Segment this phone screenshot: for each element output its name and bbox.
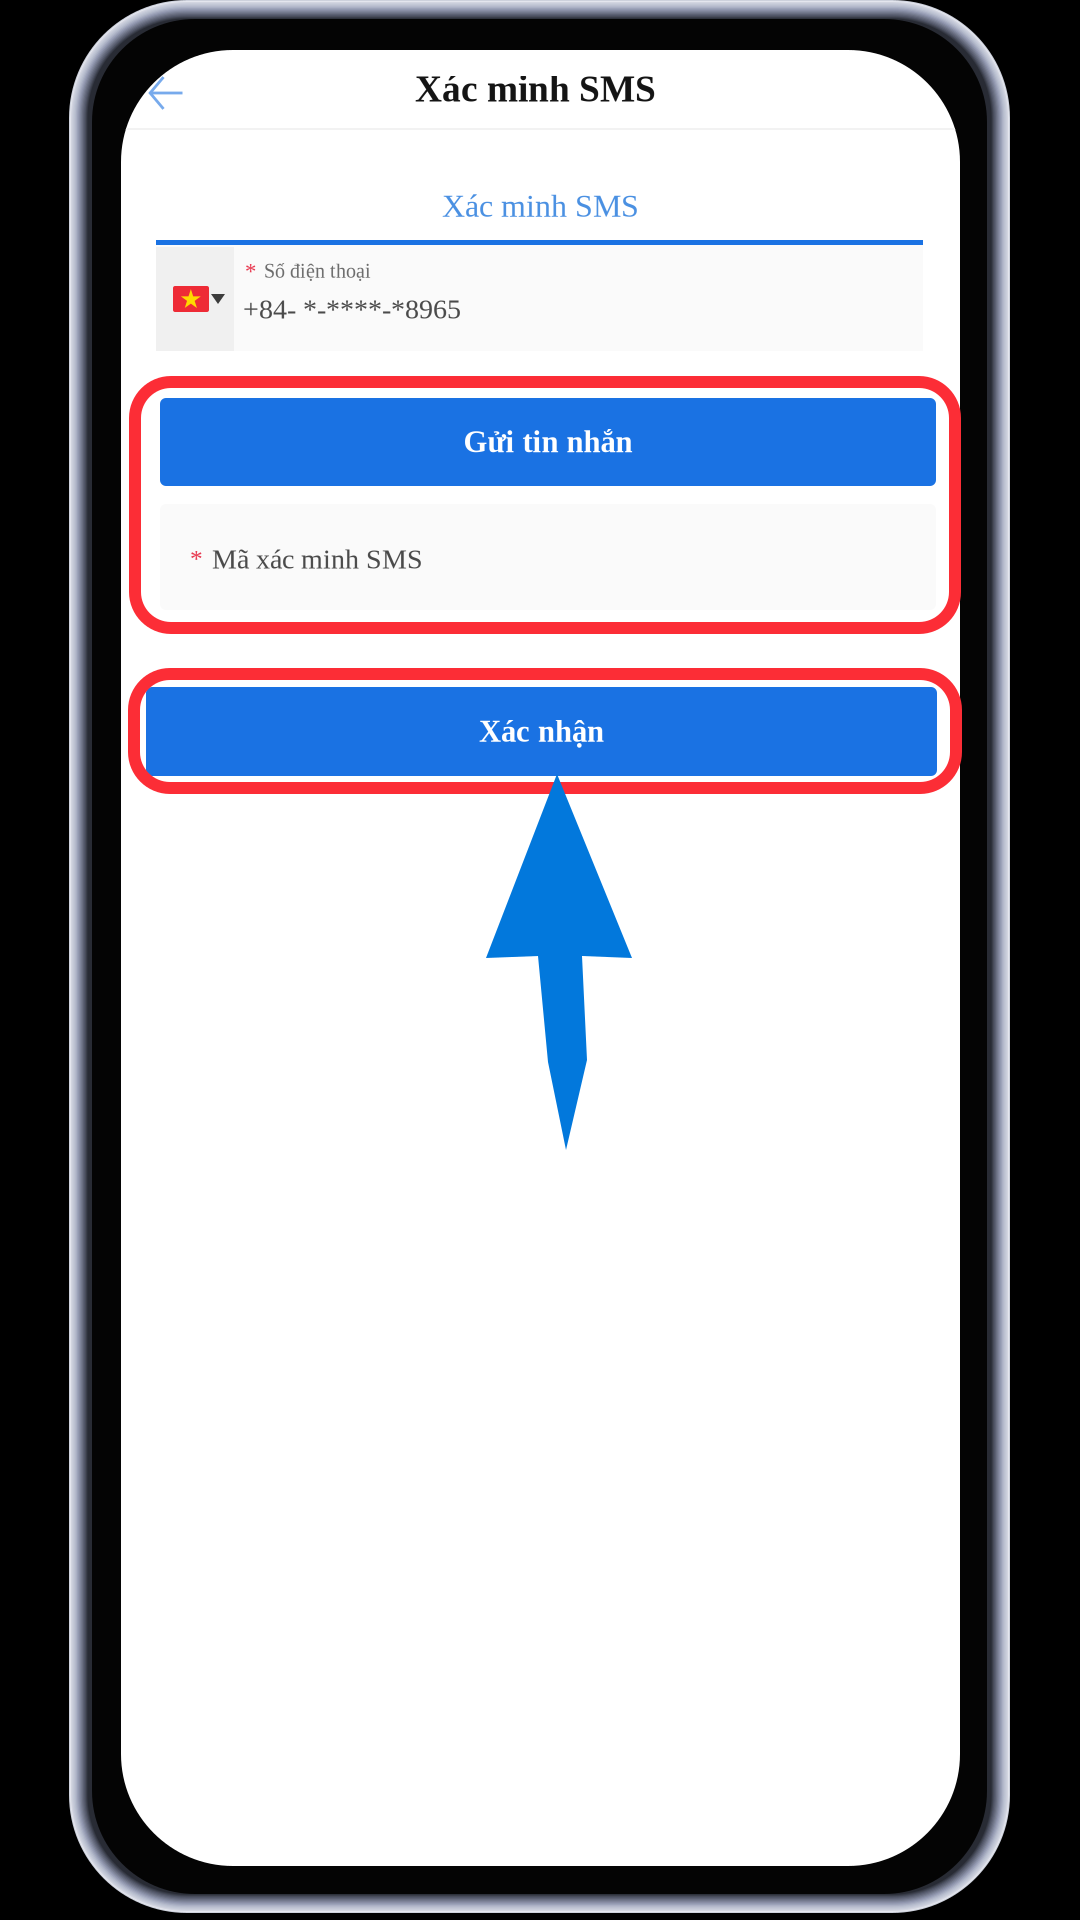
staticText: +84- *-****-*8965 xyxy=(243,293,461,324)
staticText: Xác minh SMS xyxy=(415,68,656,110)
button[interactable]: ★ xyxy=(156,245,923,351)
button[interactable]: Back xyxy=(129,56,203,130)
button[interactable]: * xyxy=(160,504,936,610)
staticText: Xác minh SMS xyxy=(442,188,639,224)
staticText: Số điện thoại xyxy=(264,260,371,282)
button[interactable]: Xác nhận xyxy=(146,687,937,776)
staticText: Gửi tin nhắn xyxy=(463,425,632,459)
button[interactable]: Gửi tin nhắn xyxy=(160,398,936,486)
staticText: * xyxy=(245,258,256,283)
staticText: * xyxy=(190,545,203,573)
staticText: ★ xyxy=(179,285,202,313)
staticText: Mã xác minh SMS xyxy=(212,543,423,574)
staticText: Xác nhận xyxy=(479,714,604,748)
